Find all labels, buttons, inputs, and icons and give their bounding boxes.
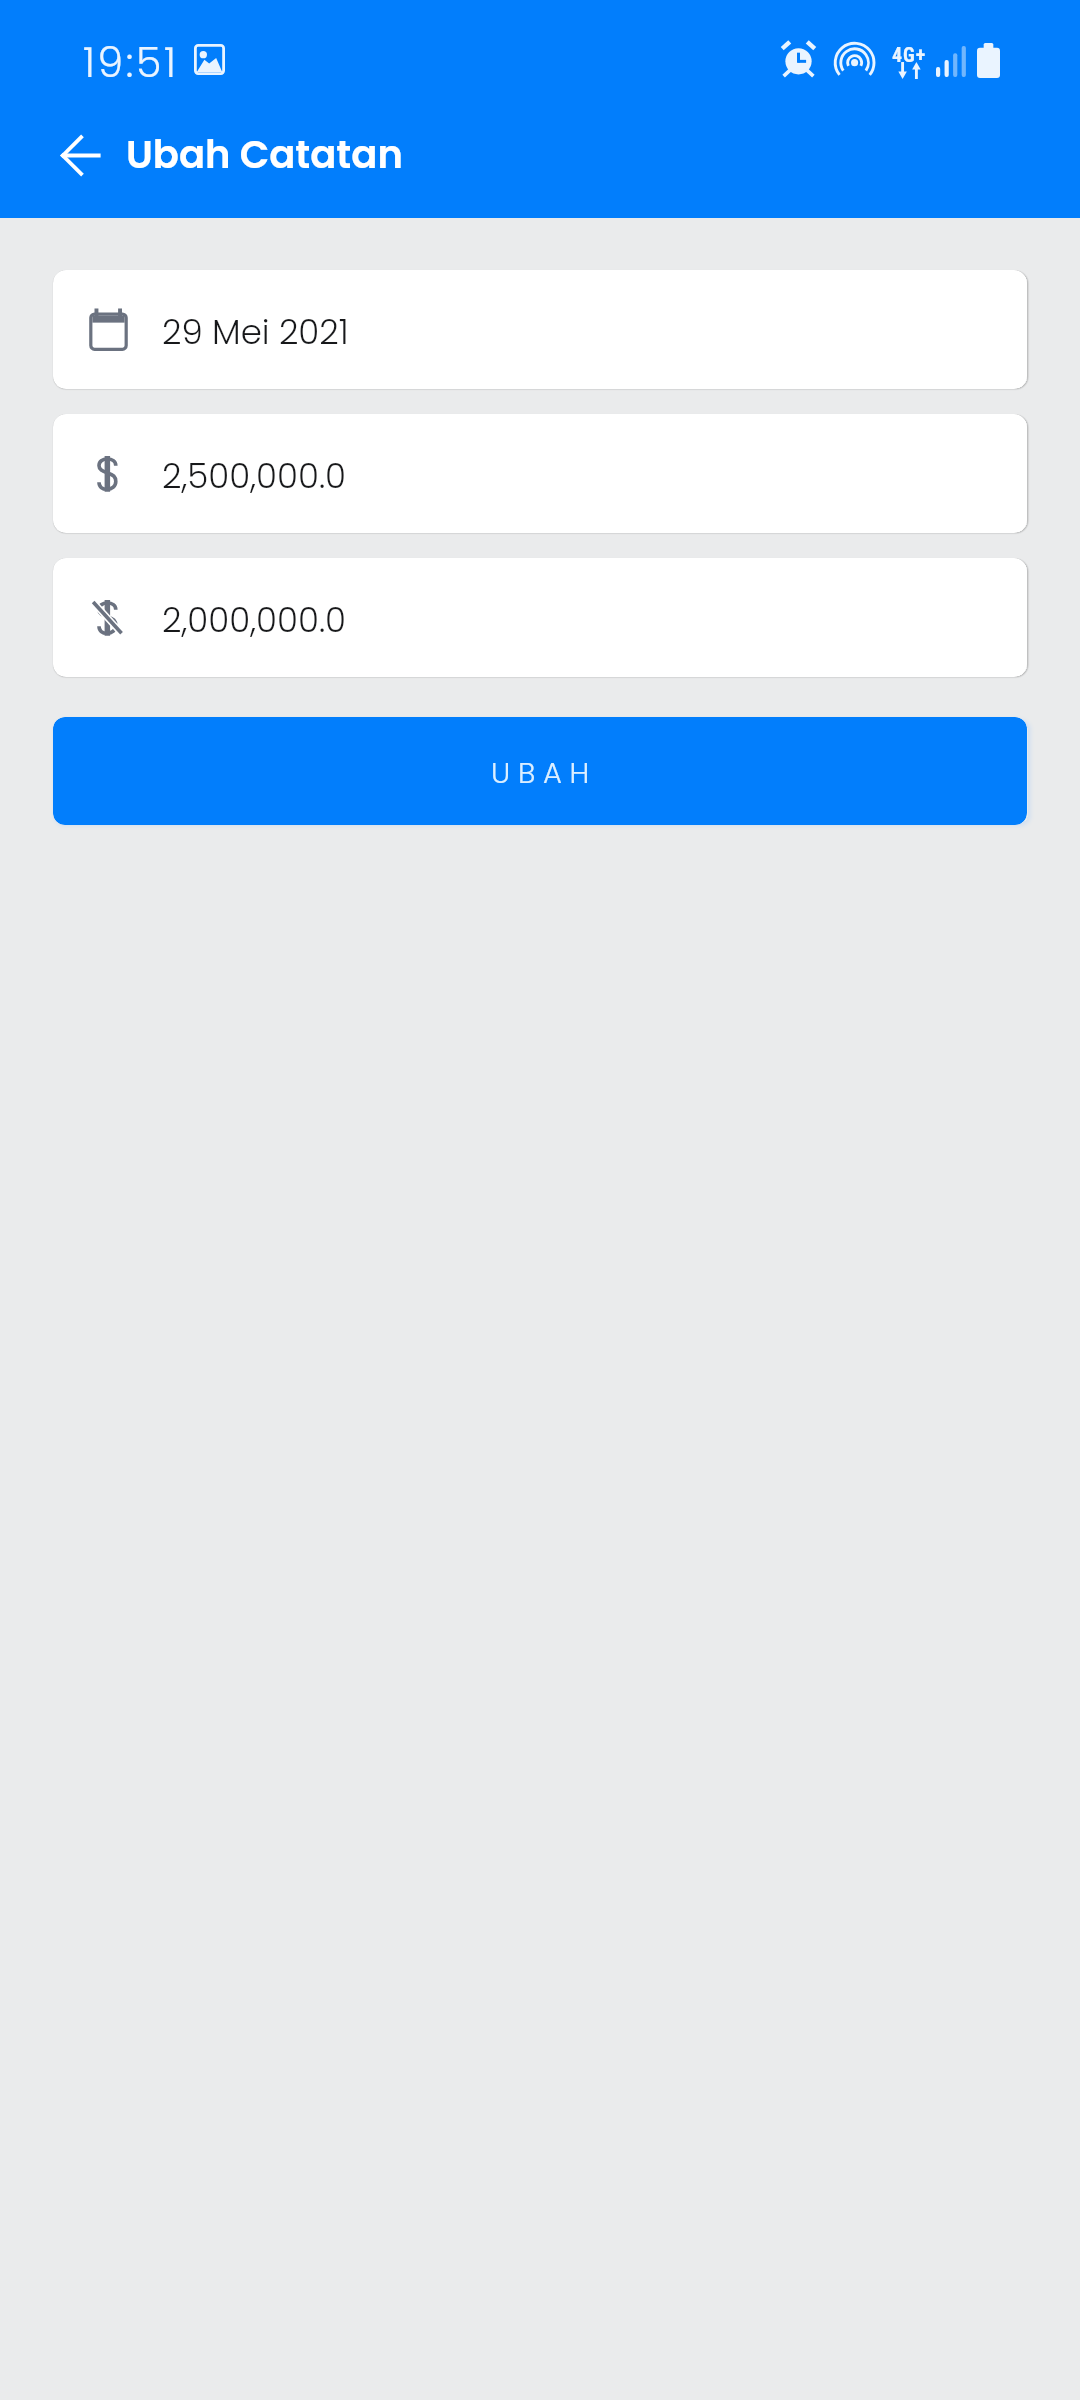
button[interactable]: Back — [41, 115, 121, 195]
staticText: 19:51 — [83, 34, 179, 91]
staticText: UBAH — [491, 753, 597, 794]
staticText: 2,500,000.0 — [162, 452, 347, 500]
button[interactable]: 29 Mei 2021 — [53, 270, 1027, 389]
button[interactable]: 2,000,000.0 — [53, 558, 1027, 677]
staticText: Ubah Catatan — [126, 128, 403, 182]
button[interactable]: UBAH — [53, 717, 1027, 825]
staticText: 4G+ — [892, 43, 927, 66]
staticText: 29 Mei 2021 — [162, 308, 349, 356]
button[interactable]: 2,500,000.0 — [53, 414, 1027, 533]
staticText: 2,000,000.0 — [162, 596, 347, 644]
